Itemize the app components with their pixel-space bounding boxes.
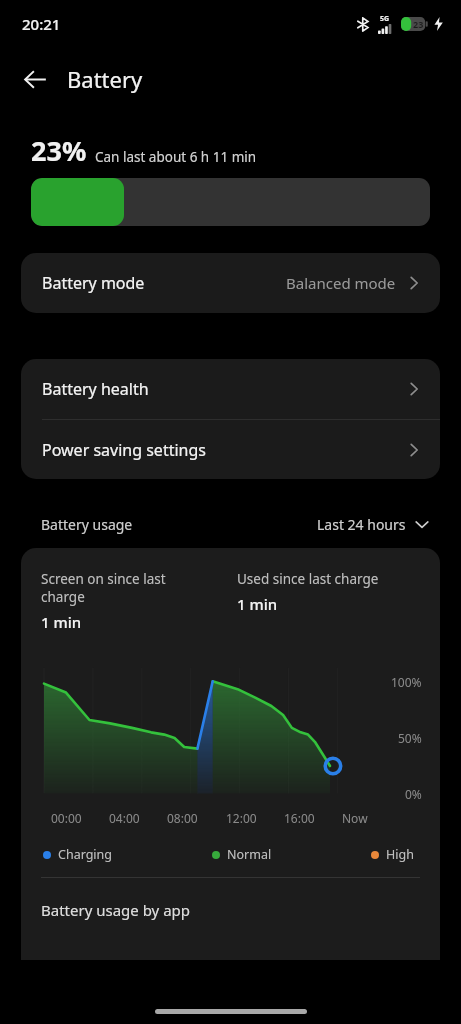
staticText: Battery usage <box>41 515 133 534</box>
staticText: 5G <box>380 14 390 24</box>
staticText: Charging <box>58 846 113 863</box>
button[interactable]: Battery usage by app <box>21 900 440 920</box>
button[interactable]: Power saving settings <box>21 420 440 479</box>
button[interactable]: Battery mode <box>21 253 440 313</box>
staticText: 0% <box>405 786 422 802</box>
staticText: Battery health <box>42 378 149 400</box>
staticText: Can last about 6 h 11 min <box>95 148 257 166</box>
staticText: 23% <box>31 132 87 169</box>
staticText: charge <box>41 588 85 606</box>
staticText: 16:00 <box>284 810 315 826</box>
button[interactable]: Back <box>12 56 58 102</box>
staticText: 50% <box>398 730 422 746</box>
staticText: 00:00 <box>51 810 82 826</box>
staticText: Battery mode <box>42 272 145 294</box>
staticText: Screen on since last <box>41 570 166 588</box>
staticText: High <box>386 846 414 863</box>
staticText: 100% <box>391 674 422 690</box>
staticText: 04:00 <box>109 810 140 826</box>
button[interactable]: Battery health <box>21 359 440 419</box>
staticText: Battery usage by app <box>41 900 190 920</box>
staticText: Power saving settings <box>42 439 206 461</box>
staticText: Now <box>342 810 368 826</box>
staticText: 1 min <box>237 594 278 614</box>
staticText: Battery <box>67 64 143 94</box>
staticText: Last 24 hours <box>317 515 406 534</box>
button[interactable]: Last 24 hours <box>313 511 433 538</box>
staticText: 1 min <box>41 612 82 632</box>
staticText: Used since last charge <box>237 570 379 588</box>
staticText: 20:21 <box>22 14 61 34</box>
staticText: 23 <box>413 18 424 30</box>
staticText: Balanced mode <box>286 273 396 293</box>
staticText: Normal <box>227 846 272 863</box>
staticText: 12:00 <box>226 810 257 826</box>
staticText: 08:00 <box>167 810 198 826</box>
